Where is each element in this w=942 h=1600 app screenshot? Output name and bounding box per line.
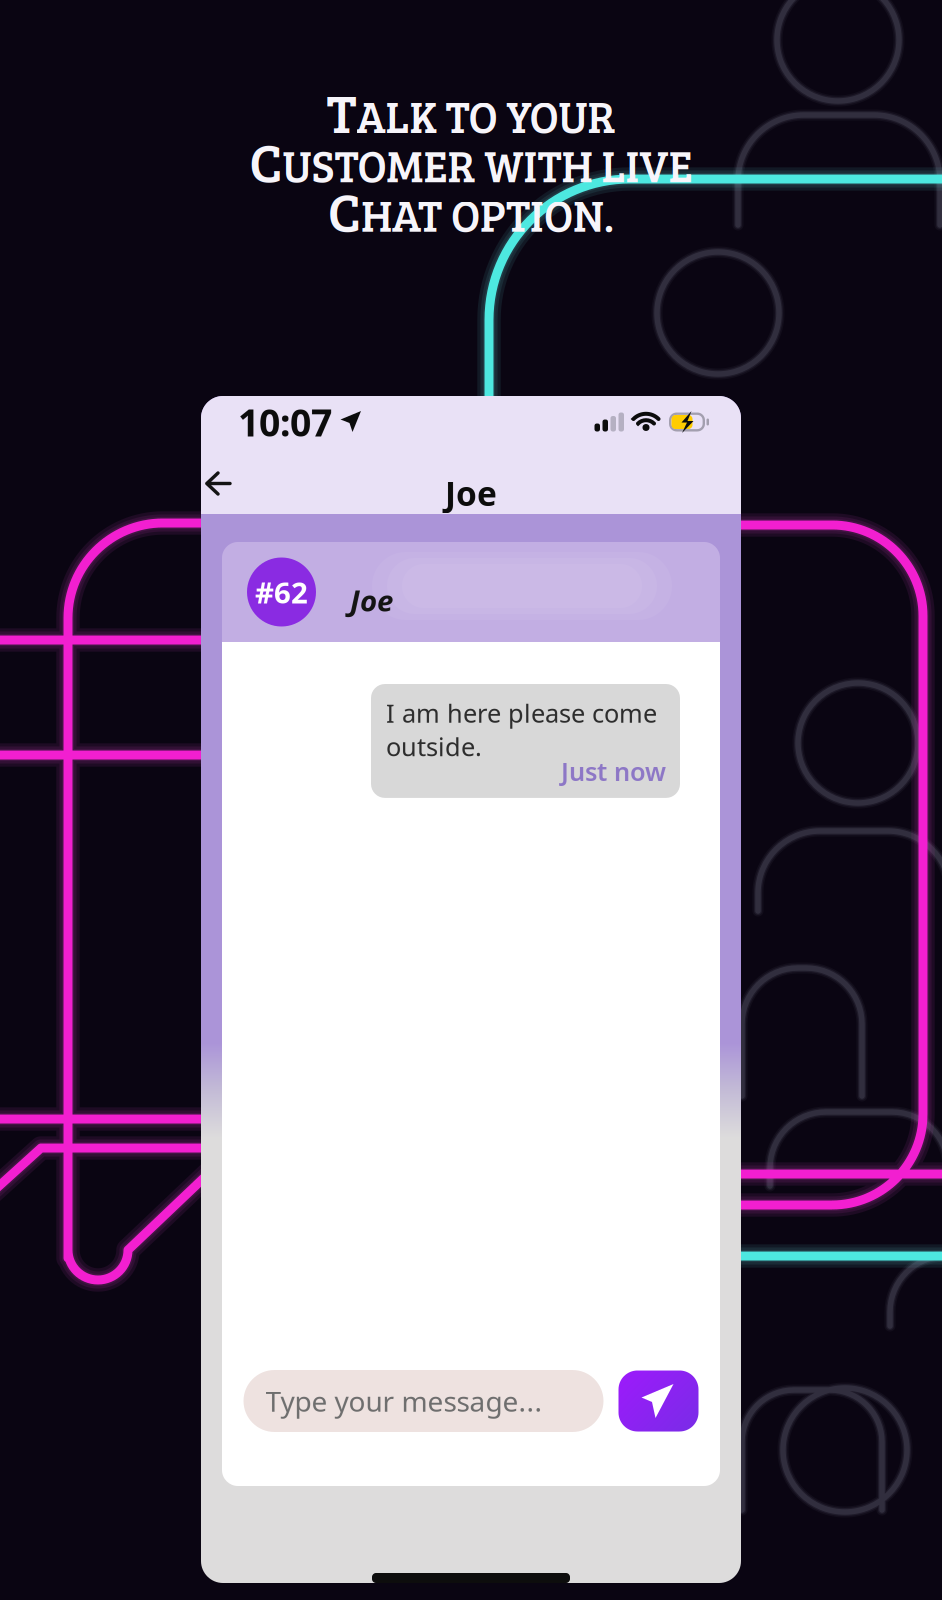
- staticText: Joe: [445, 471, 497, 515]
- staticText: 10:07: [238, 397, 332, 447]
- button[interactable]: Back: [205, 448, 251, 514]
- staticText: #62: [255, 572, 308, 611]
- button[interactable]: Send message: [618, 1370, 698, 1431]
- staticText: Joe: [350, 580, 393, 619]
- staticText: TALK TO YOUR: [326, 75, 615, 147]
- staticText: Just now: [561, 754, 666, 788]
- staticText: I am here please come outside.: [386, 696, 657, 763]
- button[interactable]: Type your message...: [243, 1370, 603, 1432]
- staticText: CHAT OPTION.: [328, 174, 614, 246]
- staticText: CUSTOMER WITH LIVE: [249, 124, 692, 197]
- staticText: Type your message...: [265, 1382, 542, 1420]
